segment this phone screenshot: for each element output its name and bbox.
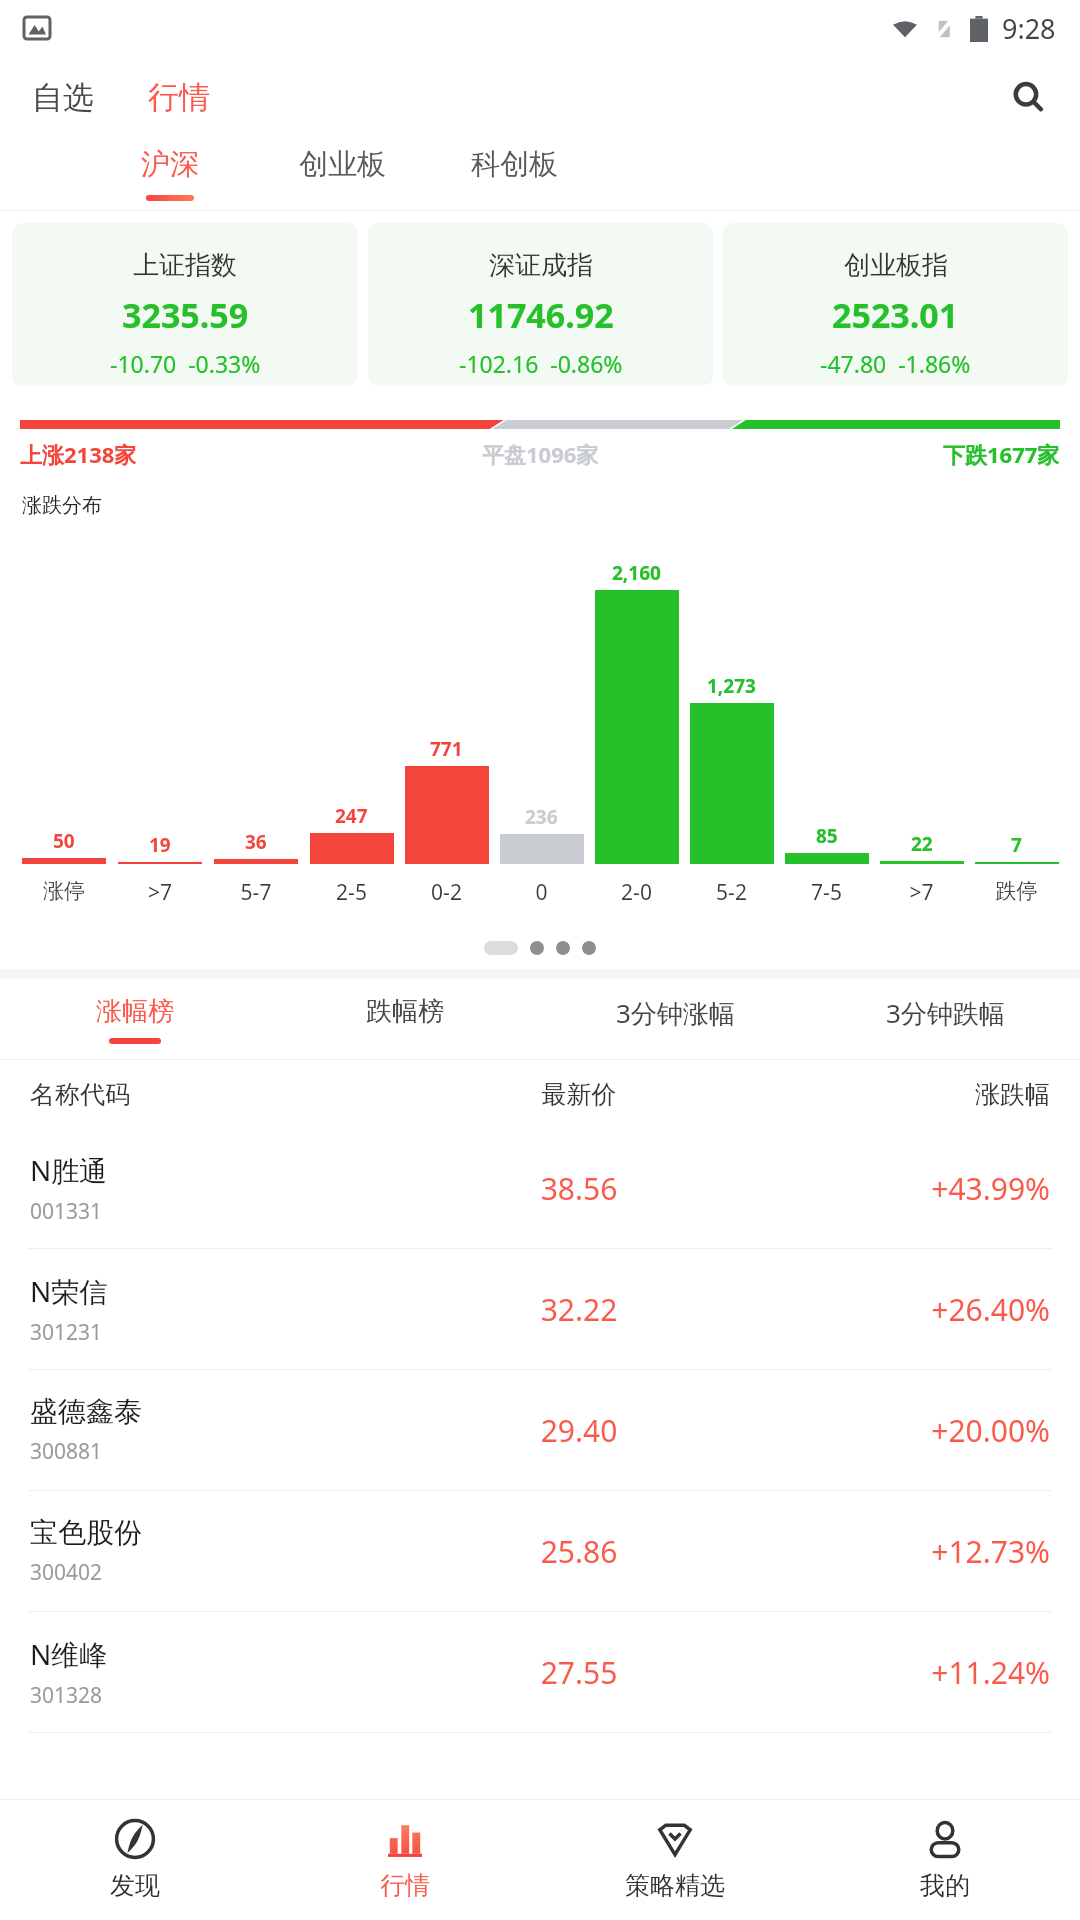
button[interactable]: 宝色股份: [0, 1491, 1080, 1611]
staticText: 9:28: [1002, 10, 1056, 47]
staticText: 行情: [380, 1870, 430, 1901]
staticText: N荣信: [30, 1272, 108, 1310]
button[interactable]: 涨幅榜: [0, 979, 270, 1059]
staticText: 300402: [30, 1558, 103, 1587]
staticText: N维峰: [30, 1635, 108, 1673]
staticText: 7: [1011, 832, 1022, 858]
staticText: 236: [525, 804, 558, 830]
staticText: 301231: [30, 1318, 103, 1347]
staticText: 50: [53, 828, 75, 854]
staticText: 38.56: [422, 1168, 736, 1209]
staticText: 自选: [32, 78, 94, 117]
staticText: +12.73%: [736, 1531, 1050, 1572]
staticText: 涨跌幅: [736, 1079, 1050, 1110]
staticText: 25.86: [422, 1531, 736, 1572]
staticText: +20.00%: [736, 1410, 1050, 1451]
staticText: 下跌1677家: [943, 439, 1060, 469]
button[interactable]: 跌幅榜: [270, 979, 540, 1059]
staticText: +43.99%: [736, 1168, 1050, 1209]
staticText: 5-7: [208, 878, 304, 907]
staticText: +26.40%: [736, 1289, 1050, 1330]
staticText: 涨停: [16, 878, 112, 904]
button[interactable]: 科创板: [428, 138, 600, 210]
button[interactable]: 3分钟跌幅: [810, 979, 1080, 1059]
staticText: 深证成指: [489, 249, 593, 282]
staticText: -102.16 -0.86%: [459, 348, 623, 379]
button[interactable]: 行情: [142, 72, 216, 123]
staticText: 策略精选: [625, 1870, 725, 1901]
staticText: 19: [149, 832, 171, 858]
button[interactable]: N荣信: [0, 1249, 1080, 1369]
button[interactable]: 自选: [26, 72, 100, 123]
button[interactable]: 3分钟涨幅: [540, 979, 810, 1059]
button[interactable]: 深证成指: [368, 223, 713, 386]
staticText: 11746.92: [468, 292, 614, 338]
button[interactable]: 盛德鑫泰: [0, 1370, 1080, 1490]
staticText: 27.55: [422, 1652, 736, 1693]
staticText: 301328: [30, 1681, 103, 1710]
staticText: 36: [245, 829, 267, 855]
staticText: 跌幅榜: [366, 995, 444, 1028]
staticText: 最新价: [422, 1079, 736, 1110]
staticText: N胜通: [30, 1151, 108, 1189]
staticText: 22: [911, 831, 933, 857]
button[interactable]: 我的: [810, 1800, 1080, 1920]
staticText: -47.80 -1.86%: [820, 348, 971, 379]
staticText: 0: [494, 878, 589, 907]
staticText: >7: [112, 878, 208, 907]
button[interactable]: 发现: [0, 1800, 270, 1920]
staticText: >7: [874, 878, 969, 907]
button[interactable]: N维峰: [0, 1612, 1080, 1732]
staticText: 涨跌分布: [22, 493, 102, 518]
staticText: 300881: [30, 1437, 103, 1466]
staticText: 上证指数: [133, 249, 237, 282]
button[interactable]: 沪深: [84, 138, 256, 210]
staticText: 盛德鑫泰: [30, 1394, 142, 1429]
staticText: 2,160: [612, 560, 661, 586]
button[interactable]: N胜通: [0, 1128, 1080, 1248]
staticText: 2-0: [589, 878, 684, 907]
button[interactable]: 创业板: [256, 138, 428, 210]
staticText: 发现: [110, 1870, 160, 1901]
staticText: 名称代码: [30, 1079, 422, 1110]
staticText: 3分钟涨幅: [616, 995, 735, 1031]
staticText: 001331: [30, 1197, 103, 1226]
staticText: 1,273: [707, 673, 756, 699]
staticText: 85: [816, 823, 838, 849]
staticText: 2-5: [304, 878, 399, 907]
staticText: 行情: [148, 78, 210, 117]
staticText: 3235.59: [122, 292, 249, 338]
staticText: 29.40: [422, 1410, 736, 1451]
button[interactable]: 策略精选: [540, 1800, 810, 1920]
staticText: 沪深: [141, 146, 199, 183]
button[interactable]: 行情: [270, 1800, 540, 1920]
staticText: 771: [430, 736, 463, 762]
staticText: 涨幅榜: [96, 995, 174, 1028]
staticText: 宝色股份: [30, 1515, 142, 1550]
staticText: 0-2: [399, 878, 494, 907]
button[interactable]: Search: [998, 67, 1058, 127]
staticText: 科创板: [471, 146, 558, 183]
staticText: 7-5: [779, 878, 874, 907]
staticText: -10.70 -0.33%: [110, 348, 261, 379]
staticText: 32.22: [422, 1289, 736, 1330]
staticText: 2523.01: [832, 292, 959, 338]
staticText: 247: [335, 803, 368, 829]
staticText: 跌停: [969, 878, 1064, 904]
button[interactable]: 创业板指: [723, 223, 1068, 386]
staticText: 我的: [920, 1870, 970, 1901]
staticText: 上涨2138家: [20, 439, 137, 469]
button[interactable]: 上证指数: [12, 223, 358, 386]
staticText: 创业板指: [844, 249, 948, 282]
staticText: +11.24%: [736, 1652, 1050, 1693]
staticText: 3分钟跌幅: [886, 995, 1005, 1031]
staticText: 创业板: [299, 146, 386, 183]
staticText: 平盘1096家: [482, 439, 599, 469]
staticText: 5-2: [684, 878, 779, 907]
